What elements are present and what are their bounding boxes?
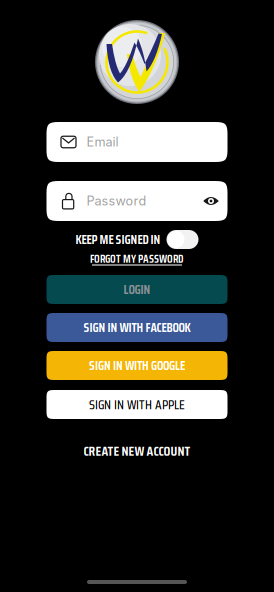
button[interactable]: CREATE NEW ACCOUNT	[46, 438, 227, 464]
staticText: KEEP ME SIGNED IN	[75, 229, 160, 249]
staticText: SIGN IN WITH GOOGLE	[89, 355, 185, 375]
staticText: Password	[86, 193, 146, 209]
button[interactable]: Email	[46, 122, 227, 162]
button[interactable]: SIGN IN WITH GOOGLE	[46, 351, 227, 380]
staticText: CREATE NEW ACCOUNT	[83, 440, 190, 461]
button[interactable]: FORGOT MY PASSWORD	[46, 255, 227, 265]
staticText: SIGN IN WITH FACEBOOK	[83, 317, 190, 337]
button[interactable]: SIGN IN WITH FACEBOOK	[46, 313, 227, 342]
staticText: LOGIN	[123, 279, 150, 299]
staticText: FORGOT MY PASSWORD	[90, 250, 184, 268]
staticText: Email	[86, 134, 118, 150]
button[interactable]: Show password	[202, 192, 219, 210]
button[interactable]: Password	[46, 181, 227, 221]
button[interactable]: Keep me signed in	[166, 230, 198, 249]
staticText: SIGN IN WITH APPLE	[89, 394, 185, 415]
button[interactable]: LOGIN	[46, 275, 227, 304]
button[interactable]: SIGN IN WITH APPLE	[46, 390, 227, 419]
